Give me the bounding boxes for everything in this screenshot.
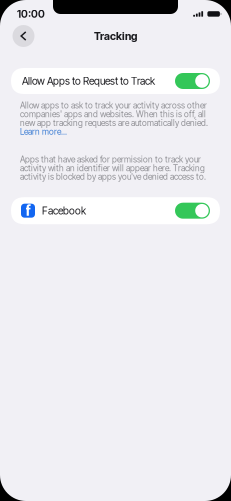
staticText: Apps that have asked for permission to t…	[20, 155, 206, 181]
staticText: Facebook	[42, 204, 86, 217]
staticText: Tracking	[94, 29, 137, 42]
button[interactable]: f	[11, 197, 220, 224]
staticText: Learn more...	[20, 127, 67, 136]
staticText: 10:00	[17, 7, 45, 20]
staticText: f	[25, 202, 30, 219]
staticText: Allow Apps to Request to Track	[22, 75, 155, 87]
button[interactable]: Back	[12, 25, 34, 47]
button[interactable]: Learn more...	[20, 127, 67, 136]
staticText: Allow apps to ask to track your activity…	[20, 101, 208, 127]
button[interactable]: Allow Apps to Request to Track	[11, 68, 220, 94]
